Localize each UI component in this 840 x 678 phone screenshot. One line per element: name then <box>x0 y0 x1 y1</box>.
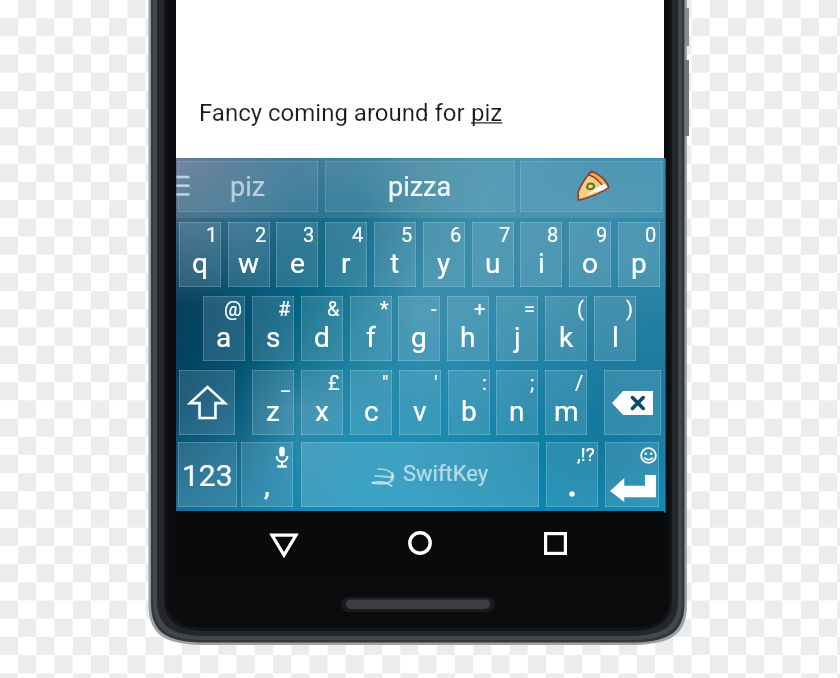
staticText: £ <box>328 371 340 394</box>
staticText: j <box>514 321 521 354</box>
staticText: 7 <box>499 223 511 246</box>
staticText: ,!? <box>577 443 595 465</box>
staticText: o <box>582 247 598 280</box>
staticText: 6 <box>450 223 462 246</box>
staticText: + <box>474 297 486 320</box>
staticText: * <box>380 297 389 320</box>
button[interactable]: Back <box>270 529 298 557</box>
staticText: ' <box>434 371 438 394</box>
staticText: 3 <box>303 223 315 246</box>
staticText: a <box>216 321 232 354</box>
button[interactable]: Menu <box>176 168 194 208</box>
button[interactable]: 5 <box>374 222 416 287</box>
button[interactable]: £ <box>301 370 343 435</box>
button[interactable]: pizza emoji <box>520 161 662 212</box>
button[interactable]: / <box>545 370 587 435</box>
staticText: v <box>413 395 427 428</box>
staticText: r <box>341 247 351 280</box>
button[interactable]: Recents <box>544 532 567 555</box>
button[interactable]: piz <box>178 161 318 212</box>
button[interactable]: Home <box>408 531 432 555</box>
staticText: 1 <box>206 223 218 246</box>
button[interactable]: 0 <box>618 222 660 287</box>
staticText: w <box>238 247 260 280</box>
button[interactable]: : <box>448 370 490 435</box>
staticText: pizza <box>388 171 452 203</box>
staticText: 4 <box>352 223 364 246</box>
staticText: s <box>266 321 281 354</box>
staticText: & <box>327 297 340 320</box>
staticText: q <box>192 247 208 280</box>
button[interactable]: ; <box>496 370 538 435</box>
staticText: z <box>266 395 280 428</box>
button[interactable]: Enter <box>605 442 659 507</box>
button[interactable]: 3 <box>276 222 318 287</box>
button[interactable]: , <box>241 442 293 507</box>
staticText: m <box>554 395 579 428</box>
staticText: t <box>390 247 400 280</box>
staticText: 8 <box>547 223 559 246</box>
staticText: piz <box>230 171 266 203</box>
button[interactable]: + <box>447 296 489 361</box>
staticText: n <box>509 395 525 428</box>
button[interactable]: " <box>350 370 392 435</box>
button[interactable]: 2 <box>228 222 270 287</box>
staticText: d <box>314 321 330 354</box>
staticText: k <box>559 321 574 354</box>
staticText: 123 <box>182 458 233 493</box>
button[interactable]: & <box>301 296 343 361</box>
staticText: f <box>366 321 376 354</box>
staticText: c <box>364 395 379 428</box>
staticText: - <box>431 297 437 320</box>
staticText: g <box>411 321 427 354</box>
staticText: l <box>612 321 619 354</box>
button[interactable]: 7 <box>472 222 514 287</box>
button[interactable]: pizza <box>325 161 515 212</box>
button[interactable]: ( <box>545 296 587 361</box>
button[interactable]: 4 <box>325 222 367 287</box>
staticText: y <box>437 247 451 280</box>
staticText: # <box>278 297 291 320</box>
staticText: piz <box>471 99 503 127</box>
button[interactable]: ' <box>399 370 441 435</box>
button[interactable]: * <box>350 296 392 361</box>
staticText: " <box>382 371 389 394</box>
button[interactable]: Shift <box>179 370 235 435</box>
button[interactable]: 6 <box>423 222 465 287</box>
button[interactable]: 9 <box>569 222 611 287</box>
staticText: h <box>460 321 476 354</box>
button[interactable]: _ <box>252 370 294 435</box>
staticText: Fancy coming around for <box>199 99 471 127</box>
staticText: i <box>538 247 545 280</box>
staticText: SwiftKey <box>403 461 489 487</box>
button[interactable]: Backspace <box>604 370 661 435</box>
button[interactable]: 8 <box>520 222 562 287</box>
staticText: / <box>575 371 584 394</box>
staticText: 5 <box>401 223 413 246</box>
button[interactable]: ) <box>594 296 636 361</box>
button[interactable]: - <box>398 296 440 361</box>
button[interactable]: = <box>496 296 538 361</box>
staticText: ; <box>530 371 535 394</box>
staticText: ( <box>577 297 584 320</box>
staticText: : <box>482 371 487 394</box>
staticText: u <box>485 247 501 280</box>
button[interactable]: @ <box>203 296 245 361</box>
button[interactable]: Space <box>301 442 539 507</box>
button[interactable]: 1 <box>179 222 221 287</box>
staticText: ) <box>626 297 633 320</box>
staticText: = <box>524 297 535 320</box>
staticText: @ <box>224 297 242 320</box>
button[interactable]: # <box>252 296 294 361</box>
staticText: 9 <box>596 223 608 246</box>
staticText: x <box>315 395 329 428</box>
staticText: 2 <box>255 223 267 246</box>
staticText: p <box>631 247 647 280</box>
staticText: , <box>264 467 270 502</box>
staticText: b <box>461 395 477 428</box>
button[interactable]: ,!? <box>546 442 598 507</box>
button[interactable]: 123 <box>178 442 237 507</box>
staticText: e <box>290 247 305 280</box>
staticText: _ <box>281 371 291 394</box>
staticText: 0 <box>645 223 657 246</box>
